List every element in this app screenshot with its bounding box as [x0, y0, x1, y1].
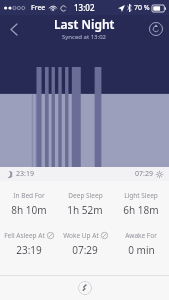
staticText: 23:19	[16, 169, 34, 179]
staticText: Synced at 13:02	[62, 33, 107, 41]
staticText: 07:29	[135, 169, 153, 179]
staticText: 6h 18m	[123, 203, 159, 217]
button[interactable]	[0, 42, 169, 167]
staticText: 70 %	[134, 3, 150, 13]
button[interactable]: Sync	[148, 21, 164, 37]
staticText: 13:02	[74, 2, 95, 13]
staticText: 07:29	[72, 243, 98, 257]
button[interactable]: Deep Sleep	[57, 190, 113, 218]
button[interactable]: Back	[3, 18, 25, 40]
staticText: Free	[31, 3, 46, 13]
button[interactable]: Fell Asleep At	[0, 230, 57, 258]
staticText: 8h 10m	[11, 203, 47, 217]
staticText: Light Sleep	[124, 191, 158, 200]
button[interactable]: Light Sleep	[113, 190, 169, 218]
staticText: Deep Sleep	[68, 191, 103, 200]
staticText: Awake For	[125, 231, 157, 240]
staticText: 0 min	[128, 243, 155, 257]
staticText: 23:19	[16, 243, 42, 257]
staticText: 1h 52m	[67, 203, 103, 217]
button[interactable]: Activity	[78, 281, 92, 295]
staticText: Fell Asleep At	[4, 231, 45, 240]
staticText: Woke Up At	[63, 231, 99, 240]
staticText: In Bed For	[13, 191, 45, 200]
button[interactable]: Awake For	[113, 230, 169, 258]
button[interactable]: In Bed For	[0, 190, 57, 218]
button[interactable]: Woke Up At	[57, 230, 113, 258]
staticText: Last Night	[54, 16, 115, 32]
